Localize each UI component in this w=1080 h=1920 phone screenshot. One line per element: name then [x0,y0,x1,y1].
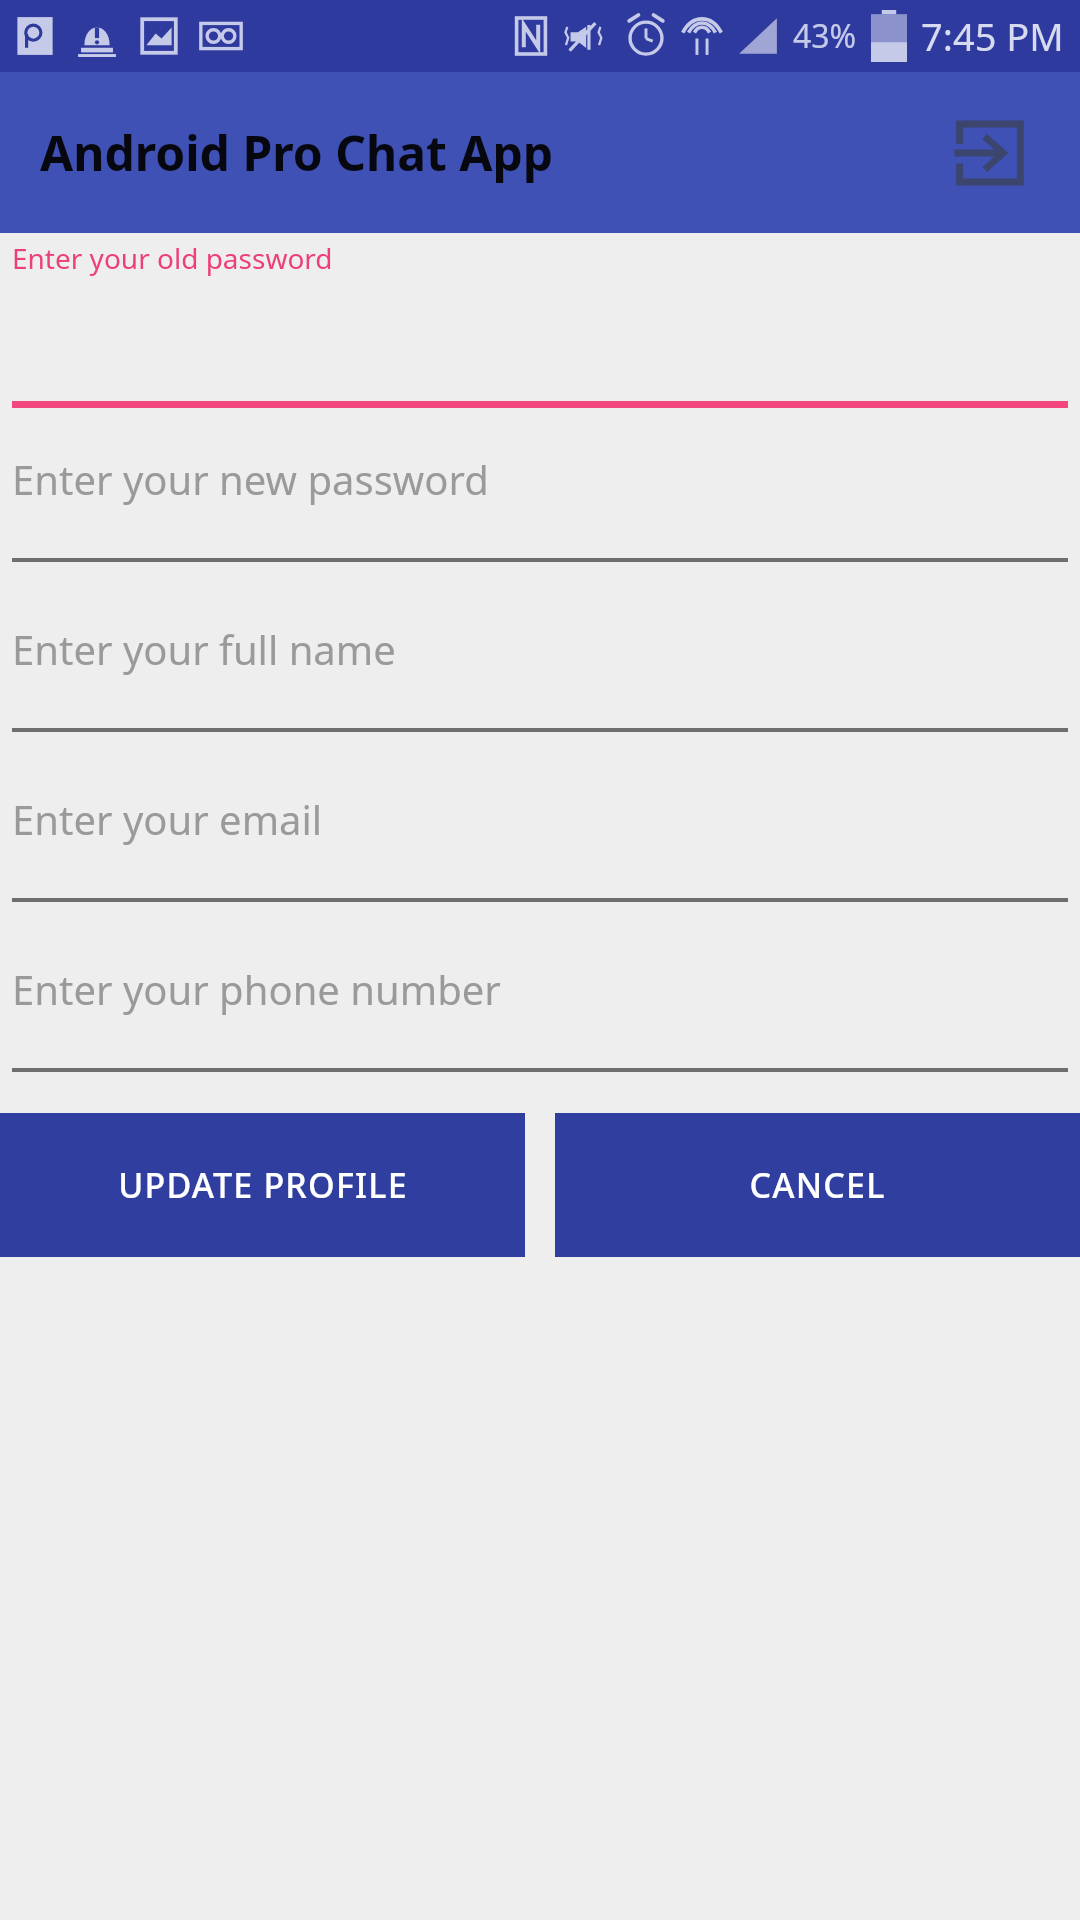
staticText: CANCEL [749,1162,886,1208]
staticText: Android Pro Chat App [40,120,554,185]
button[interactable]: Logout [948,111,1032,195]
staticText: Enter your old password [12,239,333,277]
button[interactable]: CANCEL [555,1113,1080,1257]
staticText: Enter your new password [12,452,489,506]
staticText: Enter your email [12,792,323,846]
staticText: 43% [793,14,857,58]
staticText: Enter your phone number [12,962,501,1016]
button[interactable]: UPDATE PROFILE [0,1113,525,1257]
staticText: UPDATE PROFILE [118,1162,408,1208]
staticText: Enter your full name [12,622,396,676]
staticText: 7:45 PM [921,10,1064,62]
